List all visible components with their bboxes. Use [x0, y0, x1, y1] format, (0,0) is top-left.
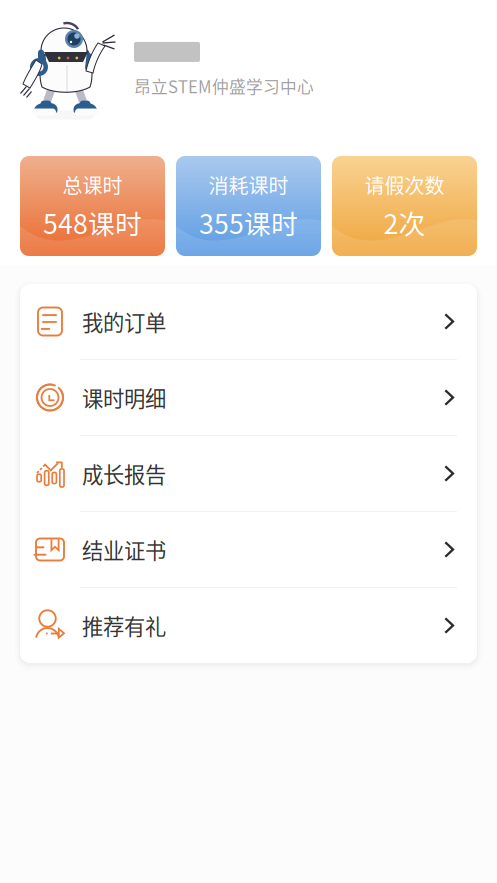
- staticText: 推荐有礼: [82, 610, 166, 641]
- button[interactable]: 我的订单: [20, 284, 477, 359]
- staticText: 昂立STEM仲盛学习中心: [134, 74, 314, 98]
- staticText: 548课时: [43, 203, 142, 242]
- staticText: 2次: [383, 203, 425, 242]
- staticText: 总课时: [62, 170, 122, 199]
- staticText: 成长报告: [82, 458, 166, 489]
- staticText: 消耗课时: [208, 170, 288, 199]
- staticText: 355课时: [199, 203, 298, 242]
- staticText: 我的订单: [82, 306, 166, 337]
- button[interactable]: 结业证书: [20, 512, 477, 587]
- staticText: 请假次数: [364, 170, 444, 199]
- staticText: 课时明细: [82, 382, 166, 413]
- button[interactable]: 成长报告: [20, 436, 477, 511]
- button[interactable]: 课时明细: [20, 360, 477, 435]
- button[interactable]: 推荐有礼: [20, 588, 477, 663]
- staticText: 结业证书: [82, 534, 166, 565]
